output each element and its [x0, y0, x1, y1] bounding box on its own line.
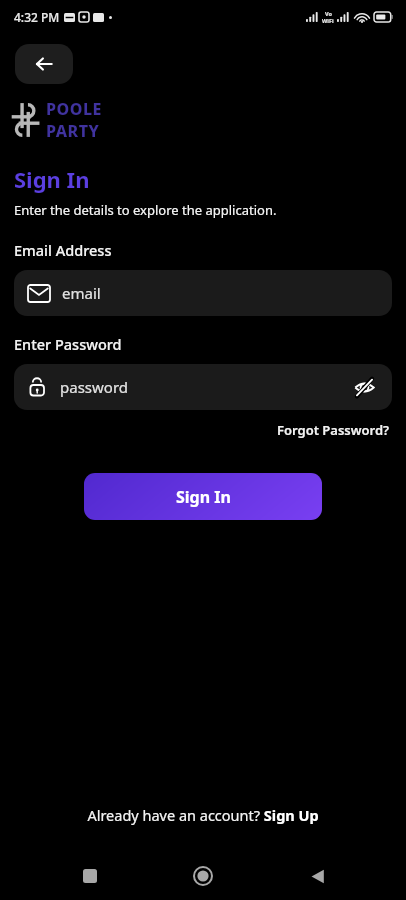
- button[interactable]: Back: [15, 44, 73, 84]
- button[interactable]: email: [14, 270, 392, 316]
- button[interactable]: Already have an account? Sign Up: [0, 805, 406, 825]
- staticText: Sign In: [176, 486, 231, 508]
- staticText: PARTY: [46, 120, 100, 142]
- button[interactable]: Home: [179, 852, 227, 900]
- staticText: Already have an account? Sign Up: [87, 805, 319, 825]
- button[interactable]: Show password: [350, 373, 378, 401]
- staticText: Sign In: [14, 164, 90, 194]
- staticText: POOLE: [46, 98, 102, 120]
- staticText: Email Address: [14, 240, 112, 260]
- staticText: Enter Password: [14, 334, 122, 354]
- staticText: WiFi: [322, 17, 334, 24]
- button[interactable]: Back: [293, 852, 341, 900]
- button[interactable]: Forgot Password?: [275, 419, 392, 441]
- staticText: Vo: [325, 10, 332, 17]
- staticText: Enter the details to explore the applica…: [14, 201, 277, 219]
- button[interactable]: Recents: [66, 852, 114, 900]
- button[interactable]: password: [14, 364, 392, 410]
- staticText: 4:32 PM: [14, 9, 60, 25]
- staticText: Forgot Password?: [277, 421, 390, 439]
- button[interactable]: Sign In: [84, 473, 322, 520]
- staticText: email: [62, 283, 101, 303]
- staticText: password: [60, 377, 128, 397]
